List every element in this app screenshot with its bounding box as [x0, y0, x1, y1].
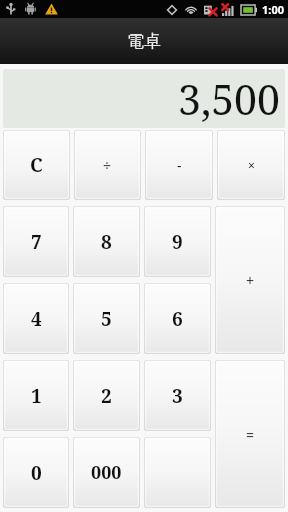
- button[interactable]: =: [215, 360, 285, 508]
- button[interactable]: 7: [3, 206, 69, 277]
- staticText: 3,500: [178, 71, 280, 127]
- button[interactable]: 4: [3, 283, 69, 354]
- button[interactable]: 8: [73, 206, 140, 277]
- button[interactable]: -: [145, 130, 213, 200]
- staticText: 2: [101, 383, 112, 409]
- button[interactable]: C: [3, 130, 70, 200]
- button[interactable]: 9: [144, 206, 211, 277]
- staticText: 4: [31, 306, 42, 332]
- staticText: 6: [172, 306, 183, 332]
- button[interactable]: 6: [144, 283, 211, 354]
- button[interactable]: 1: [3, 360, 69, 431]
- staticText: -: [177, 156, 182, 175]
- staticText: =: [246, 425, 255, 444]
- button[interactable]: 5: [73, 283, 140, 354]
- button[interactable]: 2: [73, 360, 140, 431]
- button[interactable]: +: [215, 206, 285, 354]
- staticText: 3: [172, 383, 183, 409]
- button[interactable]: ÷: [74, 130, 141, 200]
- button[interactable]: Blank key: [144, 437, 211, 508]
- button[interactable]: 0: [3, 437, 69, 508]
- staticText: 000: [91, 460, 122, 485]
- staticText: 0: [31, 460, 42, 486]
- staticText: 1: [31, 383, 42, 409]
- staticText: 電卓: [127, 31, 161, 52]
- staticText: 8: [101, 229, 112, 255]
- staticText: ÷: [103, 156, 112, 175]
- staticText: 9: [172, 229, 183, 255]
- staticText: +: [246, 271, 255, 290]
- button[interactable]: 000: [73, 437, 140, 508]
- staticText: 1:00: [262, 2, 284, 17]
- staticText: 7: [31, 229, 42, 255]
- staticText: C: [30, 152, 43, 178]
- button[interactable]: ×: [217, 130, 285, 200]
- staticText: ×: [248, 157, 255, 173]
- staticText: 5: [101, 306, 112, 332]
- button[interactable]: 3: [144, 360, 211, 431]
